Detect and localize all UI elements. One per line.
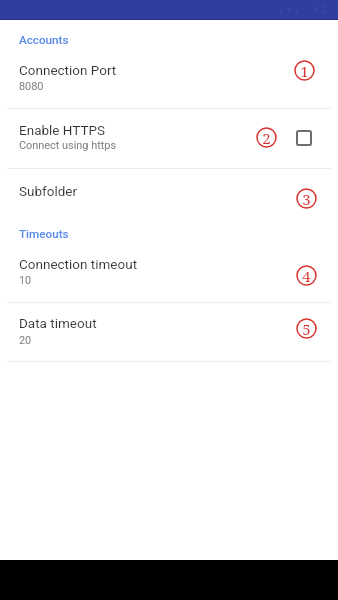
staticText: Enable HTTPS <box>19 122 106 138</box>
button[interactable]: Connection timeout <box>0 246 338 302</box>
button[interactable]: Subfolder <box>0 169 338 219</box>
staticText: 8080 <box>19 80 44 93</box>
staticText: Subfolder <box>19 183 78 199</box>
staticText: 2 <box>262 128 271 148</box>
staticText: Connect using https <box>19 139 117 152</box>
button[interactable]: Data timeout <box>0 306 338 361</box>
button[interactable]: Enable HTTPS checkbox <box>296 130 312 146</box>
staticText: 20 <box>19 334 32 347</box>
staticText: Connection Port <box>19 62 117 78</box>
staticText: 10 <box>19 274 32 287</box>
staticText: 3 <box>302 189 311 209</box>
staticText: Accounts <box>19 33 69 47</box>
button[interactable]: Enable HTTPS <box>0 109 338 168</box>
staticText: Timeouts <box>19 227 69 241</box>
staticText: 1 <box>300 61 309 81</box>
staticText: Data timeout <box>19 315 97 331</box>
staticText: 4 <box>302 266 311 286</box>
staticText: Connection timeout <box>19 256 138 272</box>
staticText: 5 <box>302 319 311 339</box>
button[interactable]: Connection Port <box>0 52 338 108</box>
